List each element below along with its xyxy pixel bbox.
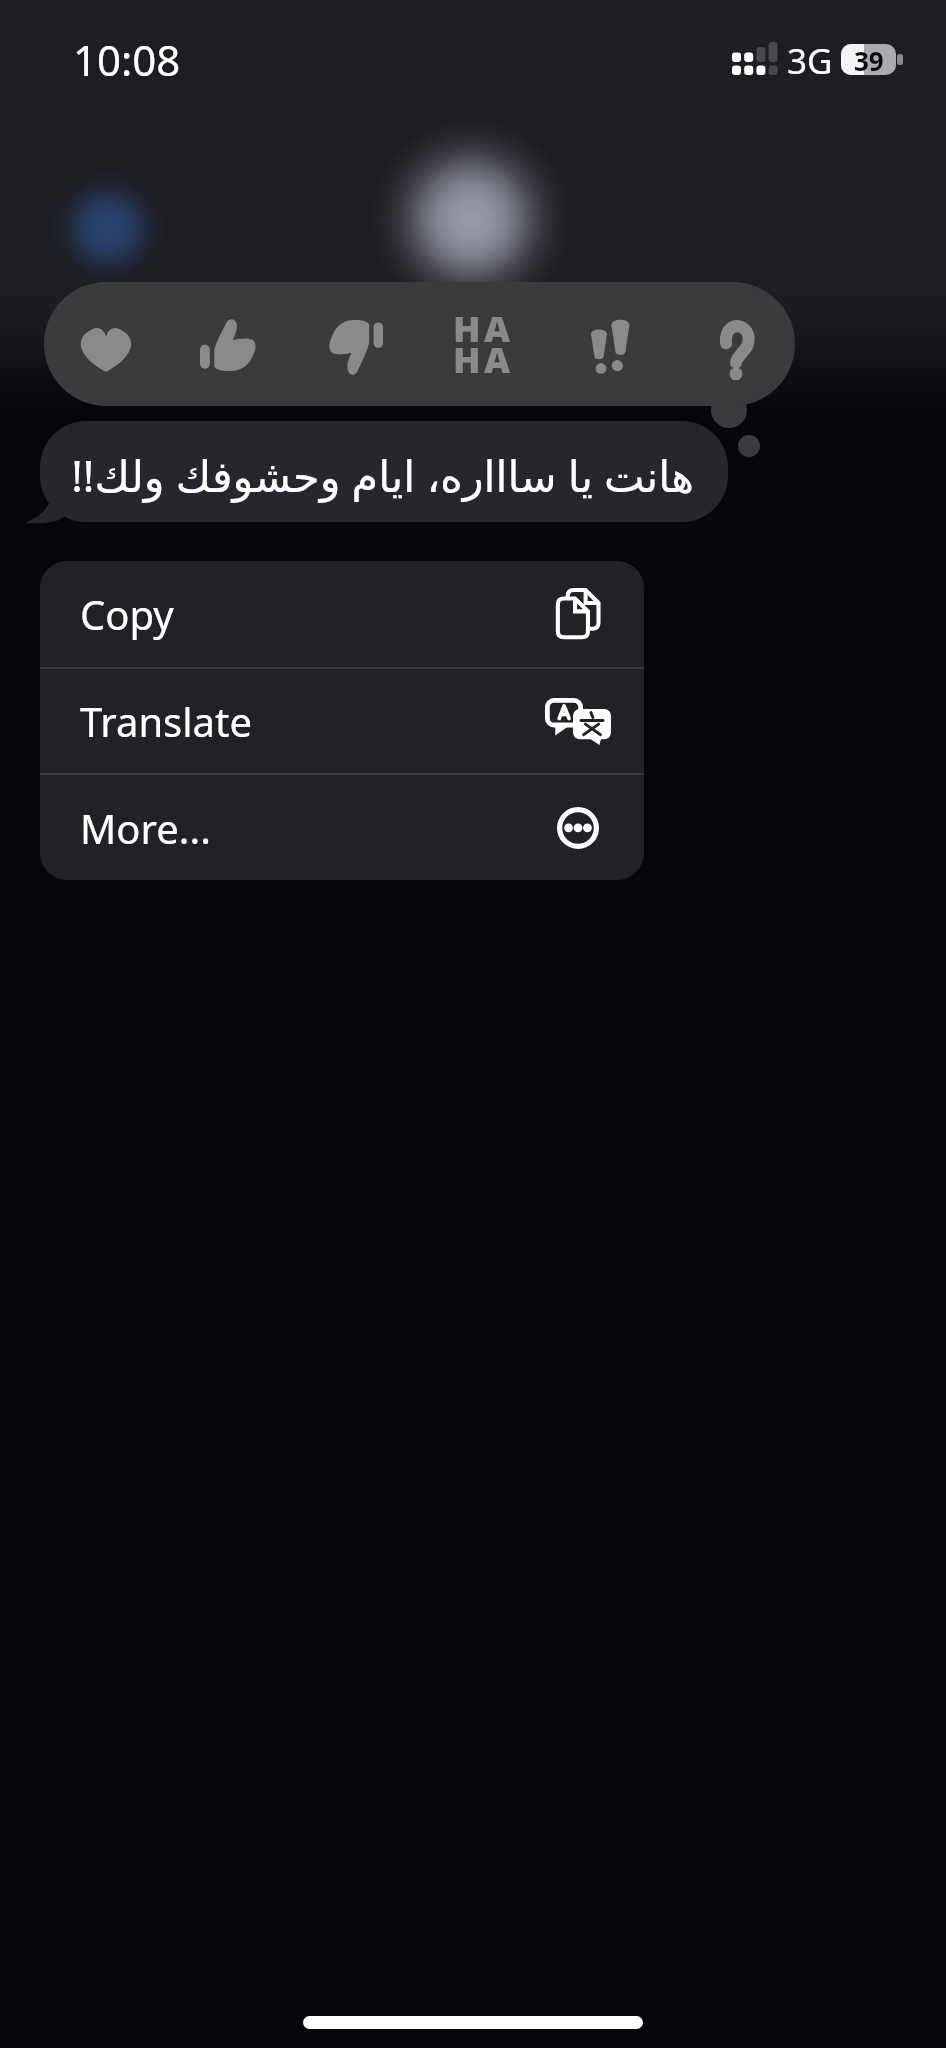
staticText: More... [80, 801, 211, 855]
button[interactable]: Translate [40, 669, 644, 773]
staticText: HA [453, 335, 514, 384]
button[interactable]: Haha [419, 282, 544, 406]
button[interactable]: Dislike [294, 282, 419, 406]
button[interactable]: Emphasize [544, 282, 669, 406]
button[interactable]: More... [40, 775, 644, 880]
staticText: 3G [787, 37, 833, 85]
button[interactable]: Question [669, 282, 794, 406]
staticText: Translate [80, 694, 253, 748]
button[interactable]: Love [44, 282, 169, 406]
staticText: هانت يا ساااره، ايام وحشوفك ولك!! [65, 446, 694, 505]
staticText: 39 [854, 44, 884, 74]
button[interactable]: Copy [40, 561, 644, 667]
staticText: 10:08 [73, 31, 181, 88]
button[interactable]: Like [169, 282, 294, 406]
staticText: Copy [80, 587, 174, 641]
staticText: HA [453, 304, 514, 353]
